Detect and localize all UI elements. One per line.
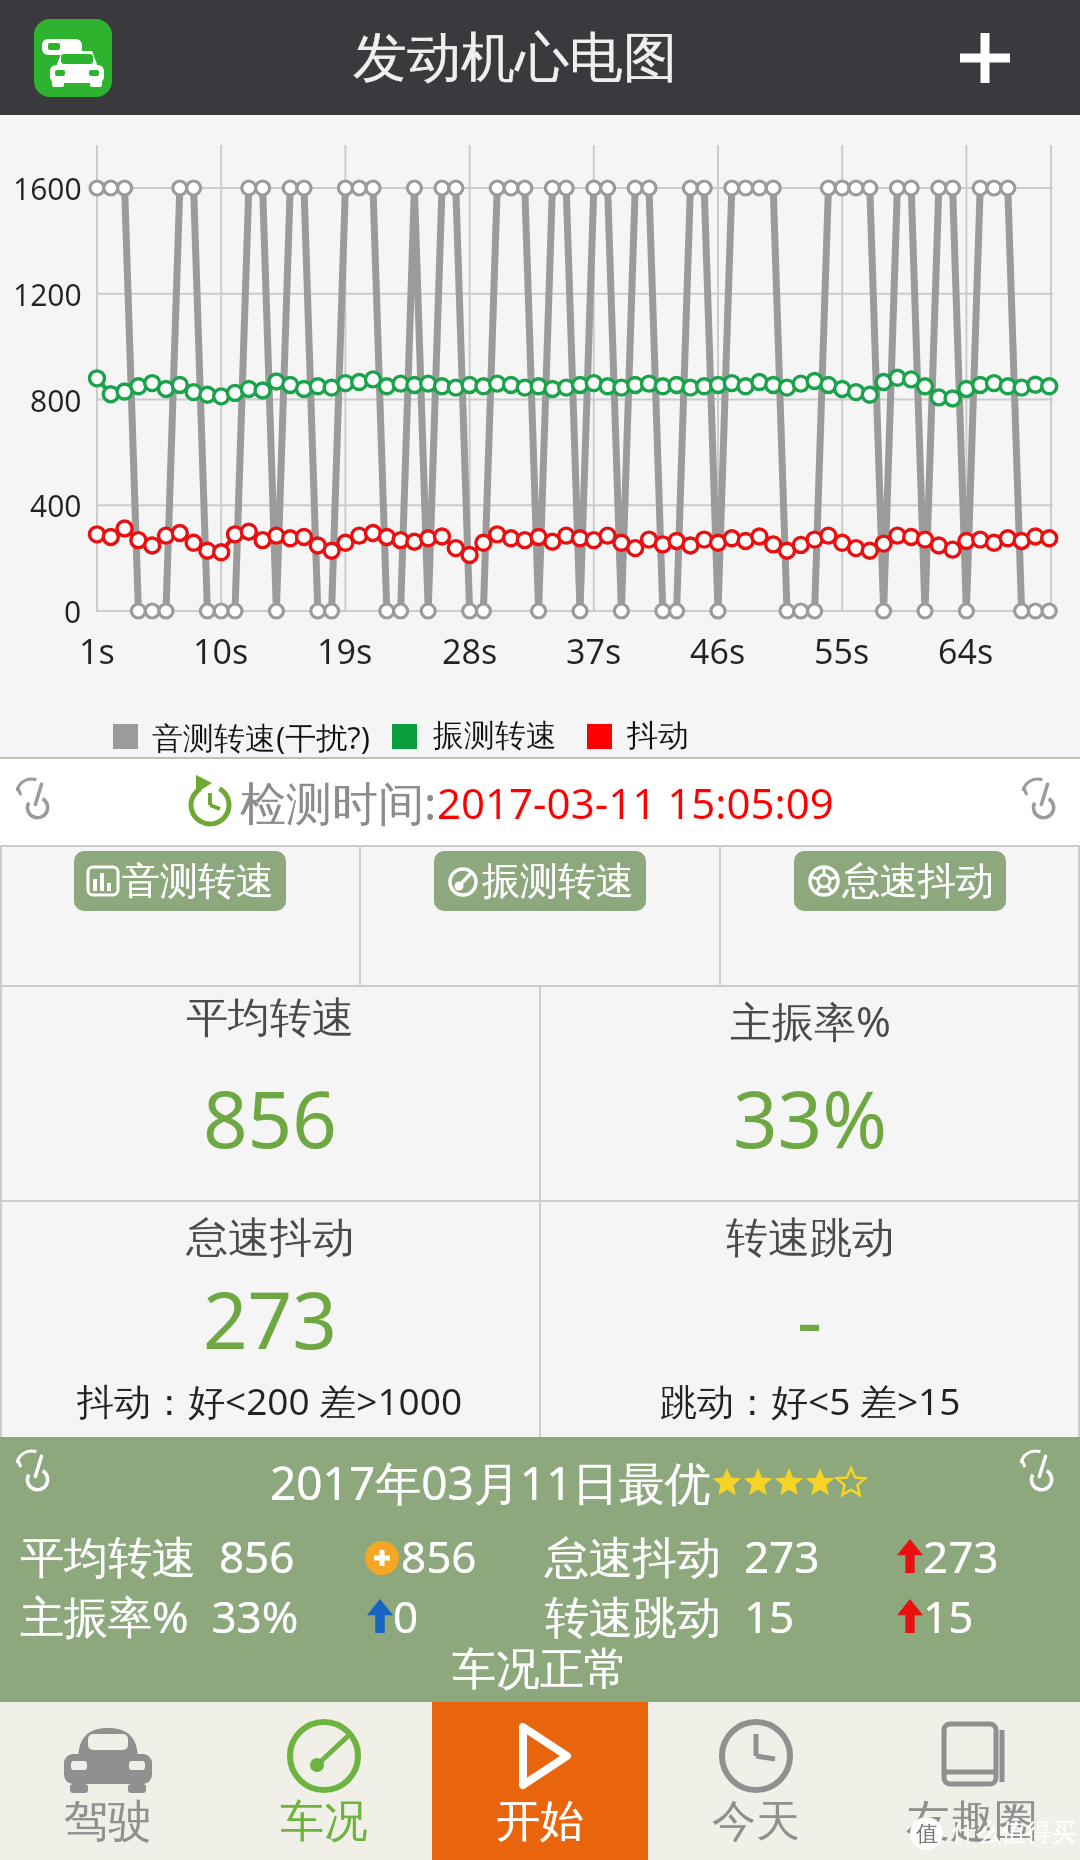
staticText: 值 xyxy=(916,1820,938,1848)
staticText: 主振率% xyxy=(730,992,891,1049)
staticText: 什么值得买 xyxy=(951,1817,1076,1848)
staticText: 车况 xyxy=(280,1794,368,1849)
button[interactable]: 友趣圈 xyxy=(864,1702,1080,1860)
staticText: 10s xyxy=(193,628,249,674)
staticText: 28s xyxy=(442,628,498,674)
button[interactable]: 音测转速 xyxy=(74,851,286,911)
staticText: 15 xyxy=(923,1586,974,1646)
staticText: 平均转速 856 xyxy=(20,1526,295,1586)
button[interactable] xyxy=(34,19,112,97)
button[interactable]: 开始 xyxy=(432,1702,648,1860)
staticText: 友趣圈 xyxy=(906,1794,1038,1849)
staticText: 37s xyxy=(566,628,622,674)
staticText: 1600 xyxy=(13,168,82,209)
staticText: - xyxy=(797,1266,823,1372)
staticText: 今天 xyxy=(712,1794,800,1849)
staticText: 驾驶 xyxy=(64,1794,152,1849)
staticText: 856 xyxy=(401,1526,477,1586)
staticText: 音测转速 xyxy=(122,857,274,905)
staticText: 856 xyxy=(203,1065,337,1171)
button[interactable]: 今天 xyxy=(648,1702,864,1860)
staticText: 0 xyxy=(64,591,82,632)
button[interactable]: 驾驶 xyxy=(0,1702,216,1860)
staticText: 发动机心电图 xyxy=(353,24,677,92)
staticText: 800 xyxy=(30,380,82,421)
staticText: 19s xyxy=(317,628,373,674)
staticText: 振测转速 xyxy=(433,716,557,755)
staticText: 抖动：好<200 差>1000 xyxy=(77,1375,463,1426)
staticText: 55s xyxy=(814,628,870,674)
button[interactable]: 车况 xyxy=(216,1702,432,1860)
staticText: 0 xyxy=(393,1586,419,1646)
staticText: 273 xyxy=(203,1266,337,1372)
staticText: 怠速抖动 xyxy=(186,1212,354,1265)
staticText: 33% xyxy=(733,1065,888,1171)
staticText: 转速跳动 15 xyxy=(545,1586,795,1646)
staticText: 音测转速(干扰?) xyxy=(152,716,371,758)
staticText: 怠速抖动 273 xyxy=(545,1526,820,1586)
staticText: 车况正常 xyxy=(452,1642,628,1697)
staticText: 检测时间: xyxy=(240,771,437,834)
staticText: 2017-03-11 15:05:09 xyxy=(437,774,834,831)
staticText: 跳动：好<5 差>15 xyxy=(660,1375,961,1426)
button[interactable]: 怠速抖动 xyxy=(794,851,1006,911)
button[interactable] xyxy=(952,25,1018,91)
staticText: 转速跳动 xyxy=(726,1212,894,1265)
staticText: 2017年03月11日最优 xyxy=(270,1451,711,1514)
staticText: 273 xyxy=(923,1526,999,1586)
button[interactable]: 振测转速 xyxy=(434,851,646,911)
staticText: 1s xyxy=(79,628,115,674)
staticText: 64s xyxy=(938,628,994,674)
staticText: 46s xyxy=(690,628,746,674)
staticText: 开始 xyxy=(496,1794,584,1849)
staticText: 1200 xyxy=(13,274,82,315)
staticText: 平均转速 xyxy=(186,992,354,1045)
staticText: 主振率% 33% xyxy=(20,1586,299,1646)
staticText: 400 xyxy=(30,485,82,526)
staticText: 抖动 xyxy=(627,716,689,755)
staticText: 怠速抖动 xyxy=(842,857,994,905)
staticText: 振测转速 xyxy=(482,857,634,905)
